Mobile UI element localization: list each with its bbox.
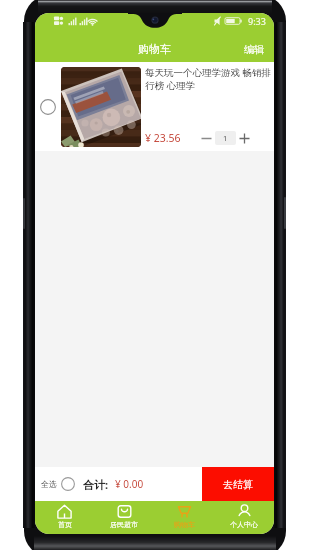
staticText: ¥ 23.56: [145, 131, 181, 145]
button[interactable]: 去结算: [202, 467, 274, 501]
staticText: 9:33: [248, 15, 266, 27]
staticText: 个人中心: [230, 520, 258, 529]
button[interactable]: 全选: [35, 477, 79, 491]
staticText: 购物车: [138, 42, 171, 56]
staticText: 首页: [58, 520, 72, 529]
button[interactable]: Decrease quantity: [198, 130, 215, 146]
staticText: 去结算: [223, 478, 253, 491]
staticText: 1: [223, 133, 228, 143]
button[interactable]: Increase quantity: [236, 130, 252, 146]
button[interactable]: 居民超市: [94, 501, 154, 534]
button[interactable]: 购物车: [154, 501, 214, 534]
staticText: 全选: [41, 479, 57, 489]
staticText: 每天玩一个心理学游戏 畅销排行榜 心理学: [145, 66, 274, 92]
button[interactable]: 1: [215, 131, 236, 145]
staticText: 合计:: [83, 477, 109, 492]
button[interactable]: 首页: [35, 501, 94, 534]
staticText: ¥ 0.00: [115, 477, 144, 491]
staticText: 购物车: [174, 520, 195, 529]
staticText: 编辑: [244, 43, 264, 56]
button[interactable]: 编辑: [234, 43, 274, 56]
button[interactable]: 个人中心: [214, 501, 274, 534]
staticText: 居民超市: [110, 520, 138, 529]
button[interactable]: Select item: [35, 62, 61, 151]
